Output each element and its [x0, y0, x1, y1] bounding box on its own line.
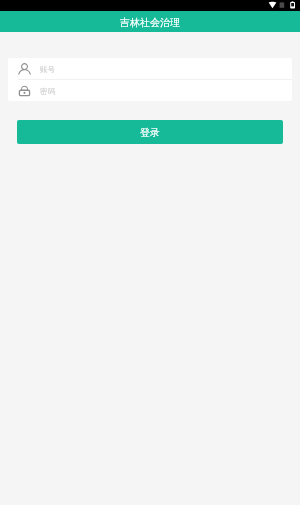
- staticText: 吉林社会治理: [120, 16, 180, 29]
- staticText: 账号: [40, 65, 55, 74]
- button[interactable]: 账号: [8, 58, 292, 79]
- button[interactable]: 登录: [17, 120, 283, 144]
- staticText: 密码: [40, 87, 55, 96]
- button[interactable]: 密码: [8, 80, 292, 101]
- staticText: 登录: [140, 126, 160, 139]
